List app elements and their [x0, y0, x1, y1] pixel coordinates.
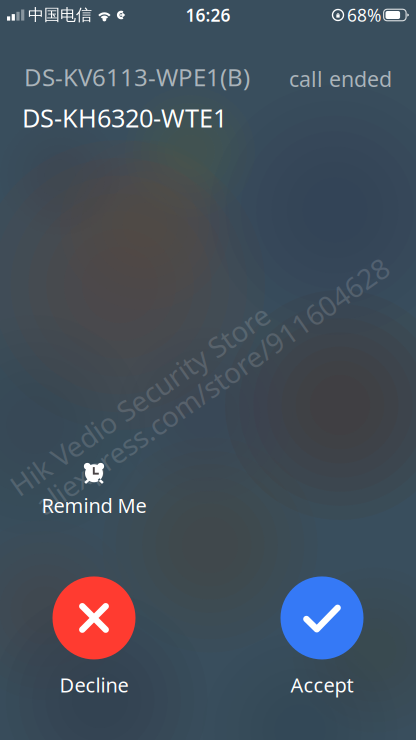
staticText: call ended [289, 64, 392, 93]
staticText: DS-KV6113-WPE1(B) [24, 61, 250, 93]
staticText: 68% [347, 3, 381, 26]
staticText: Hik Vedio Security Store [0, 381, 295, 419]
staticText: DS-KH6320-WTE1 [22, 101, 227, 134]
button[interactable]: Decline [32, 576, 156, 698]
staticText: Decline [59, 671, 128, 698]
button[interactable]: Remind Me [32, 462, 156, 518]
staticText: 中国电信 [28, 5, 92, 25]
staticText: Remind Me [41, 492, 146, 518]
staticText: aliexpress.com/store/911604628 [0, 367, 416, 405]
staticText: Accept [290, 671, 353, 698]
button[interactable]: Accept [260, 576, 384, 698]
staticText: 16:26 [185, 3, 230, 26]
